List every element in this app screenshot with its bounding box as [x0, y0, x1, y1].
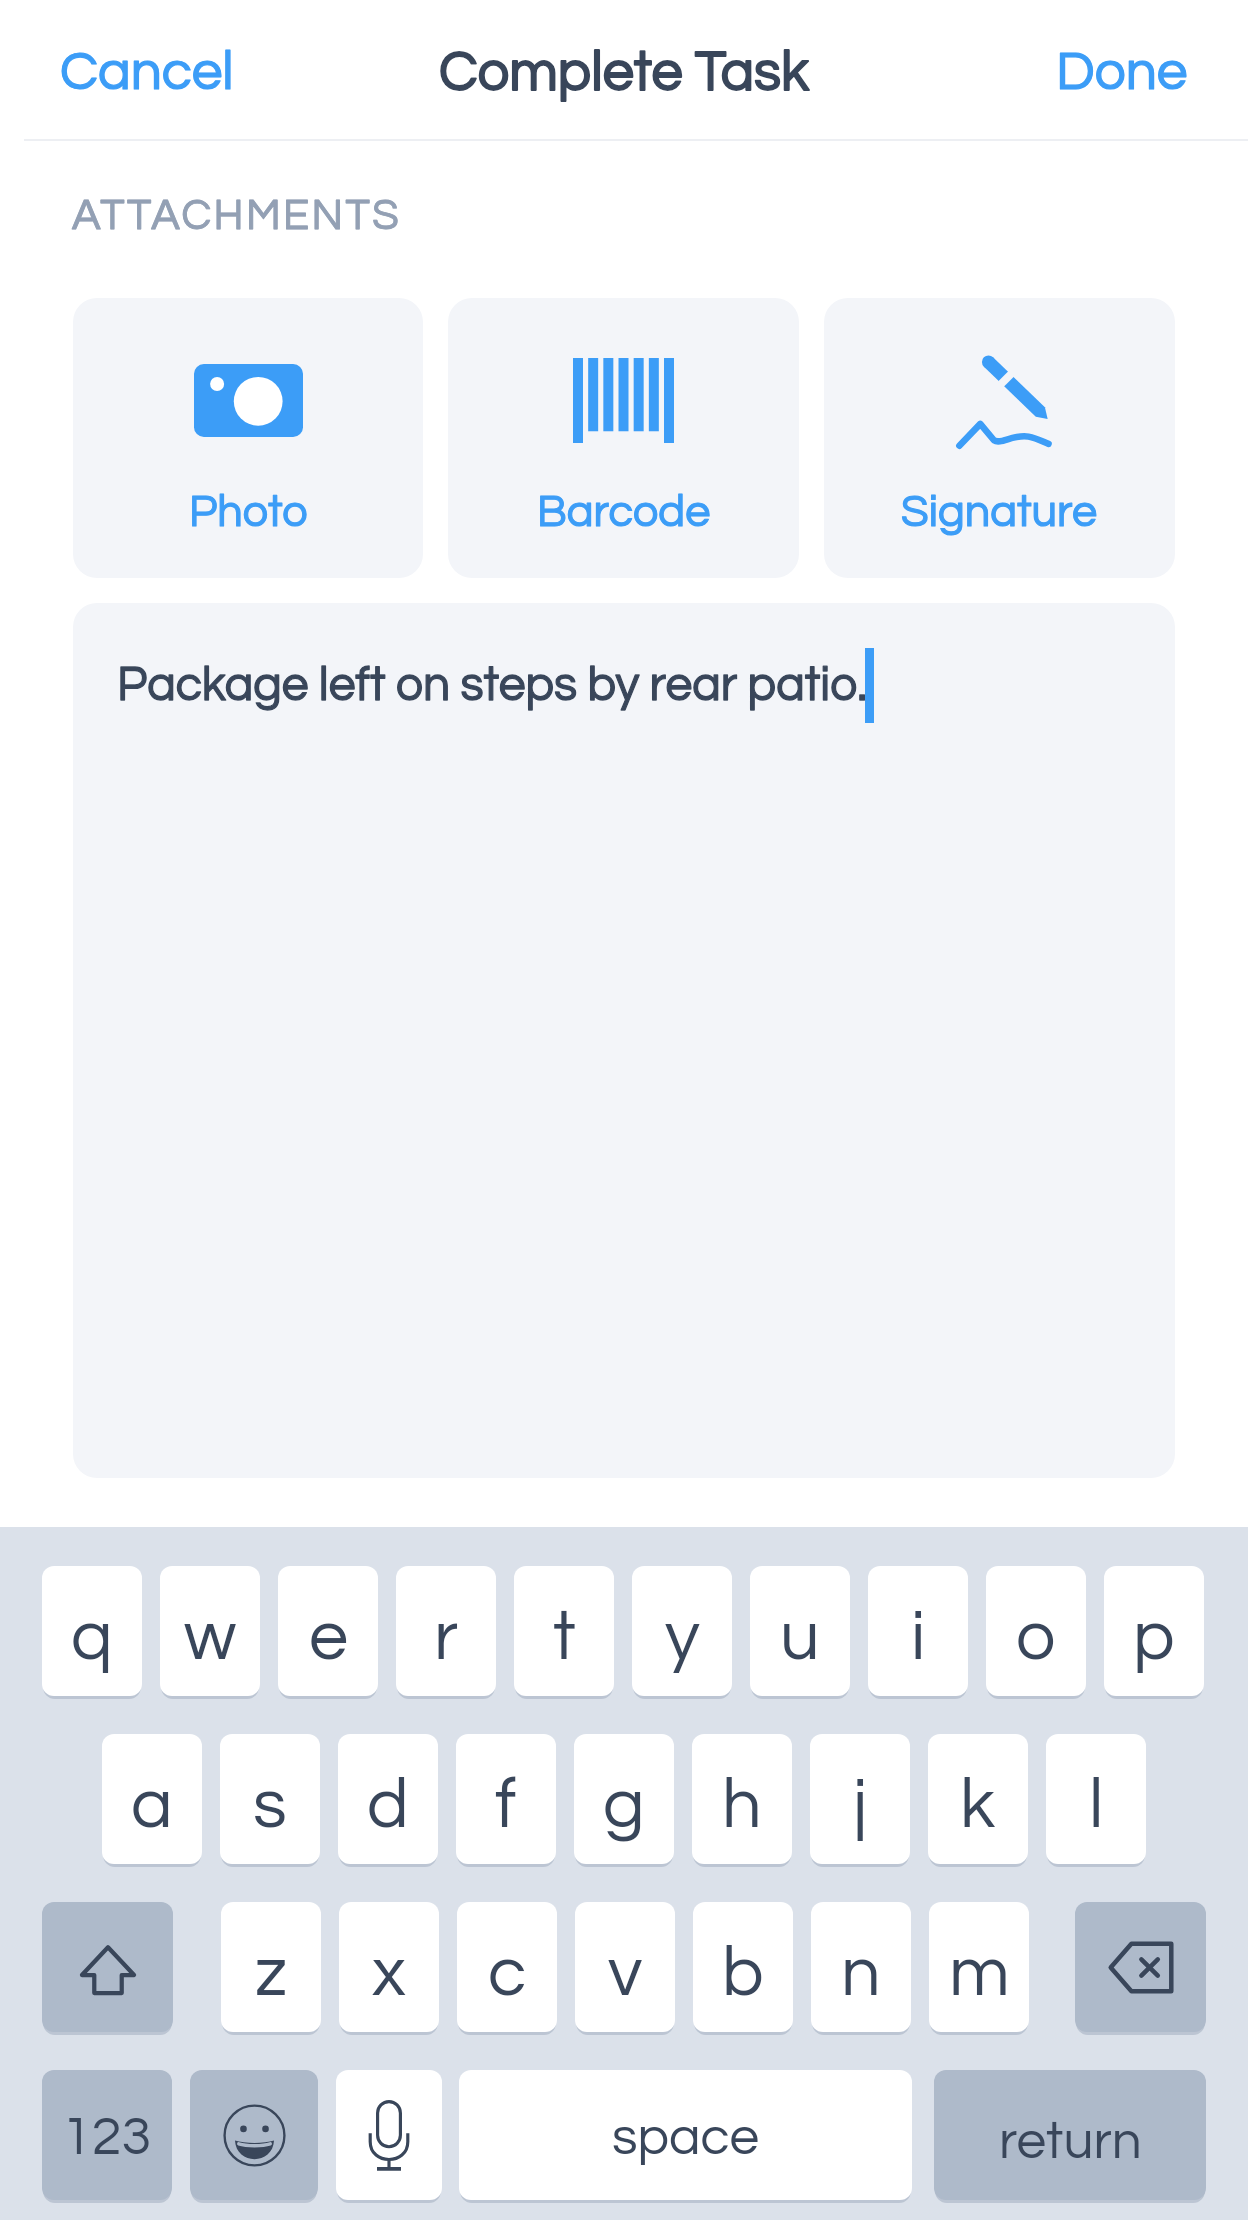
staticText: l [1089, 1770, 1104, 1842]
staticText: f [495, 1770, 517, 1842]
staticText: Signature [901, 489, 1098, 535]
staticText: u [780, 1602, 820, 1674]
button[interactable]: Backspace [1075, 1902, 1206, 2032]
button[interactable]: k [928, 1734, 1028, 1864]
staticText: return [999, 2115, 1142, 2170]
button[interactable]: return [934, 2070, 1206, 2200]
button[interactable]: Signature [824, 298, 1175, 578]
staticText: m [949, 1938, 1010, 2010]
staticText: w [184, 1602, 237, 1674]
staticText: Done [1056, 44, 1188, 101]
staticText: z [255, 1938, 288, 2010]
staticText: Complete Task [439, 44, 810, 102]
staticText: t [553, 1602, 576, 1674]
staticText: Photo [189, 489, 308, 535]
button[interactable]: v [575, 1902, 675, 2032]
button[interactable]: a [102, 1734, 202, 1864]
button[interactable]: y [632, 1566, 732, 1696]
staticText: h [722, 1770, 762, 1842]
staticText: p [1133, 1602, 1175, 1674]
staticText: g [603, 1770, 645, 1842]
staticText: k [960, 1770, 996, 1842]
button[interactable]: Photo [73, 298, 423, 578]
button[interactable]: b [693, 1902, 793, 2032]
button[interactable]: t [514, 1566, 614, 1696]
button[interactable]: l [1046, 1734, 1146, 1864]
staticText: Package left on steps by rear patio. [117, 661, 868, 710]
button[interactable]: p [1104, 1566, 1204, 1696]
button[interactable]: 123 [42, 2070, 172, 2200]
staticText: j [853, 1770, 868, 1842]
staticText: d [367, 1770, 409, 1842]
button[interactable]: e [278, 1566, 378, 1696]
button[interactable]: s [220, 1734, 320, 1864]
staticText: c [488, 1938, 527, 2010]
button[interactable]: Emoji [190, 2070, 318, 2200]
staticText: r [434, 1602, 459, 1674]
button[interactable]: q [42, 1566, 142, 1696]
button[interactable]: u [750, 1566, 850, 1696]
staticText: Done [1056, 44, 1188, 101]
button[interactable]: w [160, 1566, 260, 1696]
button[interactable]: Shift [42, 1902, 173, 2032]
staticText: b [722, 1938, 764, 2010]
button[interactable]: c [457, 1902, 557, 2032]
button[interactable]: Voice input [336, 2070, 442, 2200]
staticText: Cancel [60, 44, 234, 101]
button[interactable]: h [692, 1734, 792, 1864]
button[interactable]: g [574, 1734, 674, 1864]
staticText: Complete Task [439, 44, 810, 102]
button[interactable]: space [459, 2070, 912, 2200]
staticText: space [612, 2111, 759, 2166]
button[interactable]: Done [1034, 30, 1248, 115]
staticText: o [1016, 1602, 1056, 1674]
staticText: e [309, 1602, 348, 1674]
staticText: v [608, 1938, 643, 2010]
button[interactable]: Cancel [0, 30, 256, 115]
button[interactable]: Barcode [448, 298, 799, 578]
button[interactable]: i [868, 1566, 968, 1696]
staticText: Barcode [537, 489, 711, 535]
staticText: i [911, 1602, 926, 1674]
button[interactable]: z [221, 1902, 321, 2032]
button[interactable]: d [338, 1734, 438, 1864]
staticText: 123 [62, 2110, 152, 2166]
staticText: Package left on steps by rear patio. [117, 661, 868, 710]
staticText: x [372, 1938, 406, 2010]
staticText: a [131, 1770, 173, 1842]
staticText: s [253, 1770, 287, 1842]
button[interactable]: j [810, 1734, 910, 1864]
staticText: Cancel [60, 44, 234, 101]
staticText: Photo [189, 489, 308, 535]
staticText: q [71, 1602, 113, 1674]
button[interactable]: m [929, 1902, 1029, 2032]
staticText: Signature [901, 489, 1098, 535]
button[interactable]: Completion notes [73, 603, 1175, 1478]
button[interactable]: o [986, 1566, 1086, 1696]
staticText: y [665, 1602, 700, 1674]
button[interactable]: x [339, 1902, 439, 2032]
staticText: ATTACHMENTS [72, 194, 401, 238]
staticText: Barcode [537, 489, 711, 535]
button[interactable]: f [456, 1734, 556, 1864]
staticText: ATTACHMENTS [72, 194, 401, 238]
button[interactable]: r [396, 1566, 496, 1696]
button[interactable]: n [811, 1902, 911, 2032]
staticText: n [841, 1938, 881, 2010]
